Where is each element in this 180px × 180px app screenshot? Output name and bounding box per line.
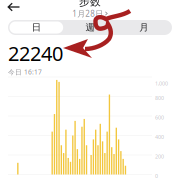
- button[interactable]: 日: [9, 21, 63, 33]
- staticText: 月: [139, 22, 148, 33]
- staticText: 0: [155, 172, 158, 180]
- staticText: 800: [155, 94, 164, 102]
- staticText: 週: [85, 22, 94, 33]
- staticText: 600: [155, 114, 164, 121]
- staticText: 200: [155, 153, 164, 160]
- staticText: 400: [155, 133, 164, 141]
- staticText: 1月28日: [72, 8, 103, 19]
- staticText: 1,000: [155, 80, 168, 87]
- button[interactable]: 週: [63, 21, 117, 33]
- button[interactable]: Back: [0, 1, 25, 13]
- staticText: 22240: [8, 40, 63, 67]
- button[interactable]: 月: [117, 21, 170, 33]
- staticText: 日: [32, 22, 41, 33]
- staticText: 步数: [79, 0, 101, 8]
- staticText: 今日 16:17: [8, 68, 42, 76]
